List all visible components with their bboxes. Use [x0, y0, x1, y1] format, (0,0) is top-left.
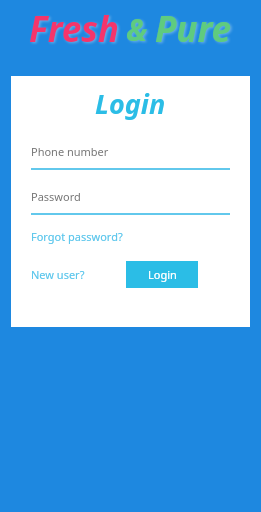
staticText: Login	[95, 85, 166, 122]
button[interactable]: Phone number	[31, 144, 230, 170]
staticText: Pure	[155, 5, 232, 53]
button[interactable]: Forgot password?	[31, 229, 123, 244]
staticText: Fresh	[29, 5, 119, 53]
staticText: Phone number	[31, 144, 109, 159]
staticText: Login	[148, 267, 177, 282]
staticText: &	[126, 9, 148, 50]
button[interactable]: Password	[31, 189, 230, 215]
staticText: Password	[31, 189, 81, 204]
button[interactable]: Login	[126, 261, 198, 288]
button[interactable]: New user?	[31, 267, 85, 282]
